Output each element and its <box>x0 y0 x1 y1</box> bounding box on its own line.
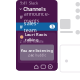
button[interactable]: # <box>16 22 57 31</box>
staticText: # <box>19 14 22 21</box>
staticText: announcements <box>24 10 50 24</box>
staticText: Channels <box>23 5 46 13</box>
staticText: 2 in the huddle <box>20 40 44 43</box>
staticText: Leave huddle <box>27 54 46 57</box>
button[interactable]: You are listening <box>20 44 54 60</box>
button[interactable]: Channels <box>16 5 57 13</box>
staticText: 9:41 Slack <box>20 0 38 5</box>
button[interactable]: DMs <box>41 64 45 69</box>
button[interactable]: # <box>16 13 57 21</box>
staticText: 3 <box>51 24 53 29</box>
staticText: You are listening <box>20 48 53 53</box>
button[interactable]: Home <box>34 64 38 69</box>
staticText: Lauri Rao is talking <box>25 32 47 42</box>
button[interactable]: Activity <box>48 64 52 69</box>
staticText: # <box>19 23 22 30</box>
staticText: sales-team <box>24 19 39 34</box>
